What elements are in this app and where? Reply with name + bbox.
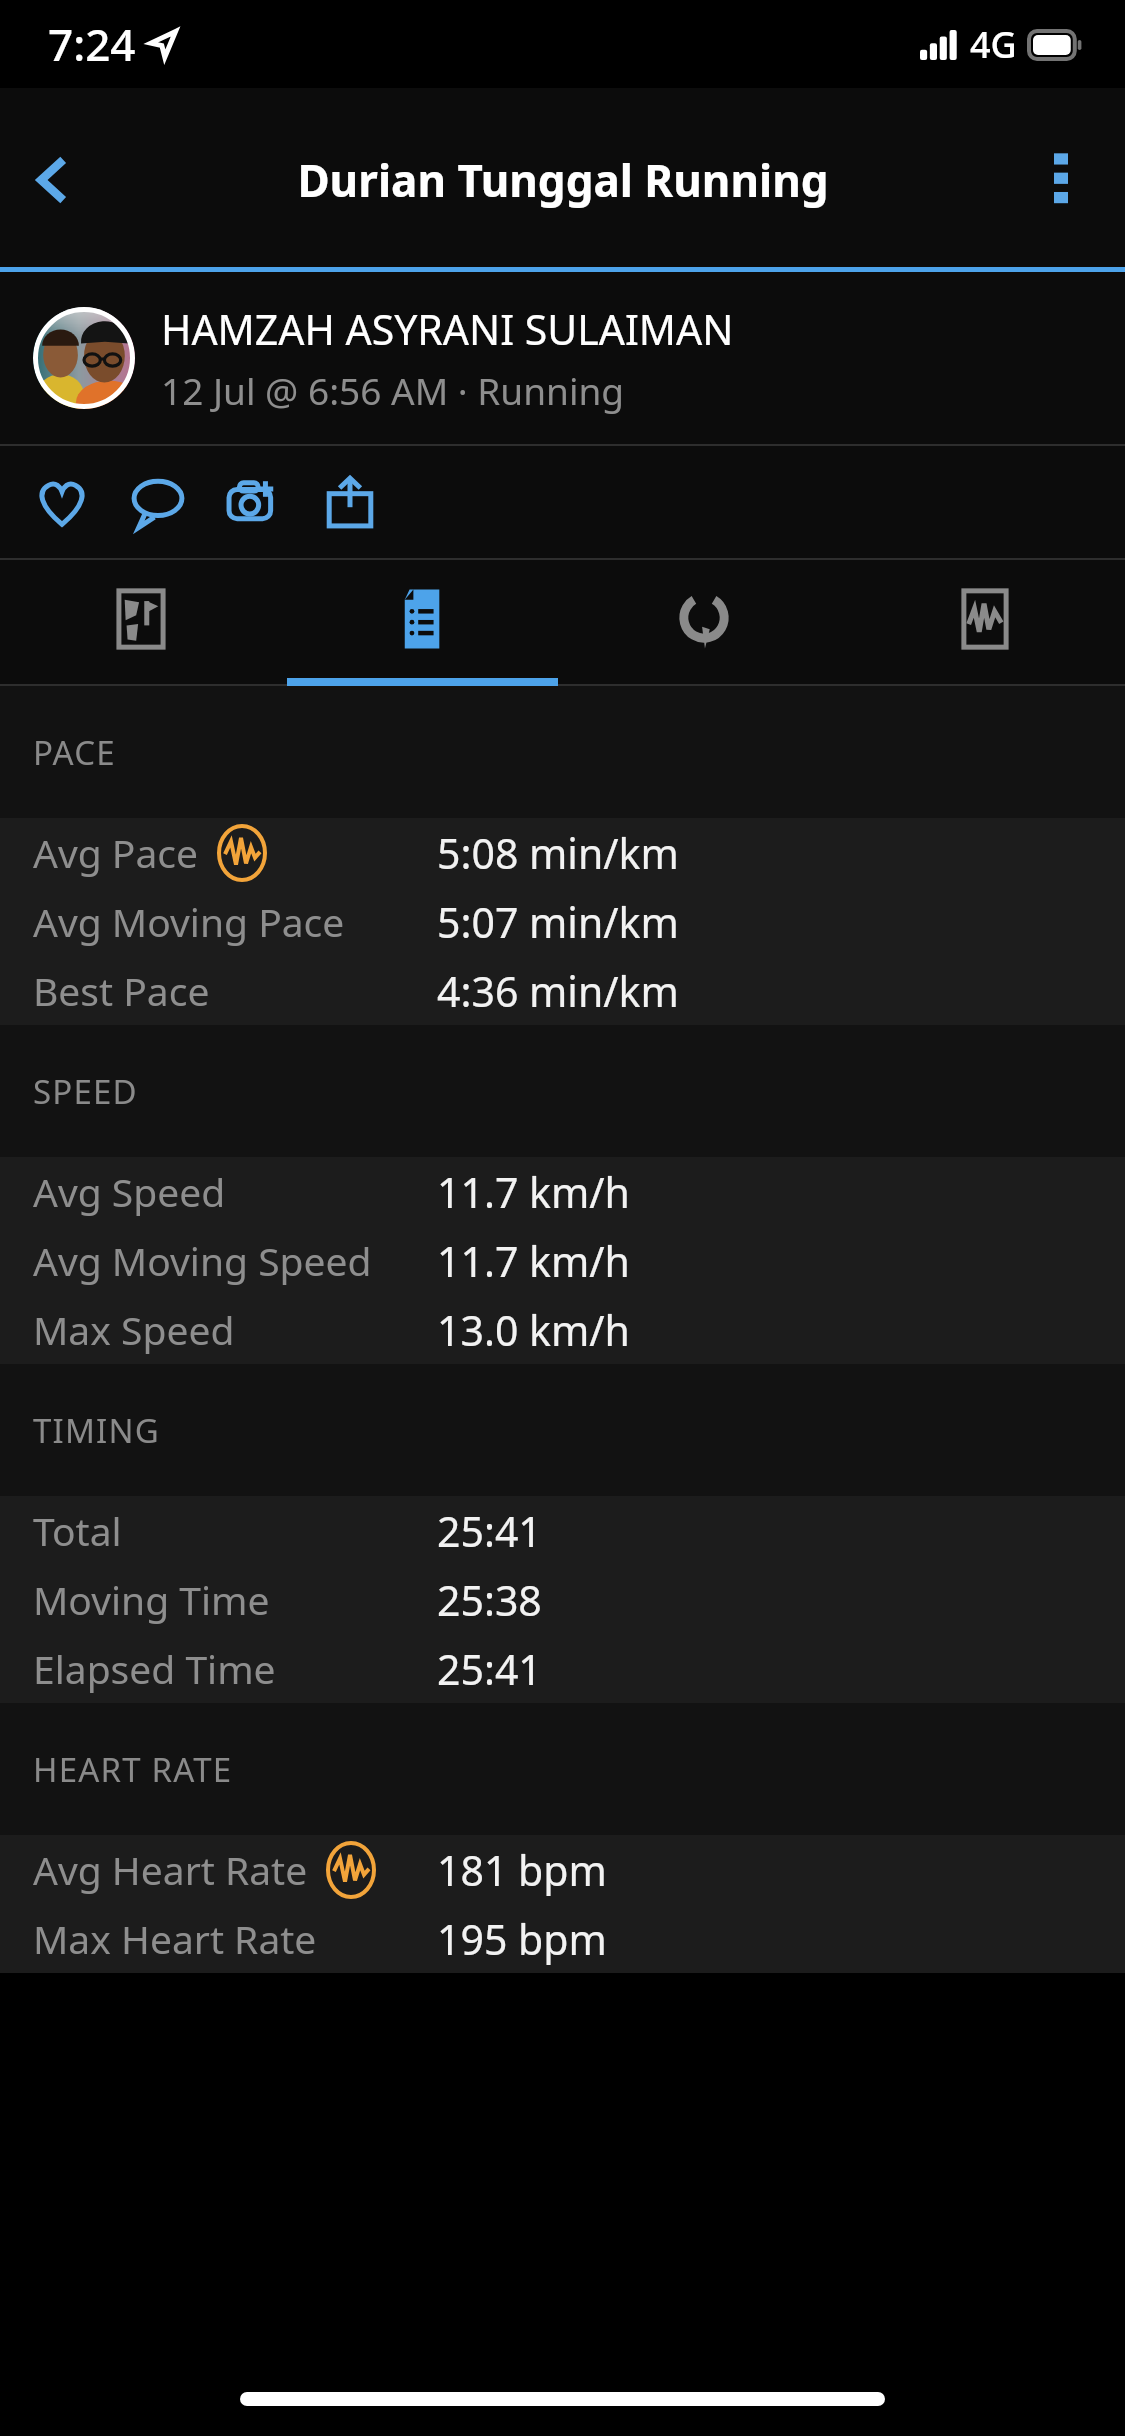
button[interactable]: Map: [0, 560, 282, 678]
button[interactable]: Max Speed: [0, 1295, 1125, 1364]
staticText: SPEED: [33, 1069, 138, 1114]
staticText: 11.7 km/h: [437, 1233, 630, 1289]
button[interactable]: Avg Moving Pace: [0, 887, 1125, 956]
staticText: 4:36 min/km: [437, 963, 679, 1019]
staticText: 25:38: [437, 1572, 542, 1628]
staticText: 195 bpm: [437, 1911, 607, 1967]
button[interactable]: Best Pace: [0, 956, 1125, 1025]
staticText: Avg Heart Rate: [33, 1843, 308, 1896]
staticText: Avg Speed: [33, 1165, 226, 1218]
staticText: Avg Pace: [33, 826, 199, 879]
staticText: 181 bpm: [437, 1842, 607, 1898]
button[interactable]: Avg Moving Speed: [0, 1226, 1125, 1295]
staticText: Avg Moving Speed: [33, 1234, 372, 1287]
button[interactable]: HAMZAH ASYRANI SULAIMAN: [0, 272, 1125, 444]
staticText: 5:07 min/km: [437, 894, 679, 950]
button[interactable]: Avg Speed: [0, 1157, 1125, 1226]
button[interactable]: Elapsed Time: [0, 1634, 1125, 1703]
staticText: Moving Time: [33, 1573, 270, 1626]
button[interactable]: Like: [14, 452, 110, 552]
staticText: Elapsed Time: [33, 1642, 276, 1695]
staticText: HEART RATE: [33, 1747, 233, 1792]
button[interactable]: Graphs: [844, 560, 1125, 678]
button[interactable]: Avg Heart Rate: [0, 1835, 1125, 1904]
button[interactable]: Comment: [110, 452, 206, 552]
staticText: Max Heart Rate: [33, 1912, 317, 1965]
staticText: 13.0 km/h: [437, 1302, 630, 1358]
staticText: Total: [33, 1504, 122, 1557]
staticText: 5:08 min/km: [437, 825, 679, 881]
button[interactable]: Share: [302, 452, 398, 552]
staticText: TIMING: [33, 1408, 160, 1453]
button[interactable]: Avg Pace: [0, 818, 1125, 887]
staticText: 25:41: [437, 1503, 542, 1559]
button[interactable]: Details: [282, 560, 563, 678]
staticText: PACE: [33, 730, 116, 775]
staticText: 11.7 km/h: [437, 1164, 630, 1220]
button[interactable]: Total: [0, 1496, 1125, 1565]
staticText: Max Speed: [33, 1303, 235, 1356]
staticText: 4G: [970, 20, 1017, 69]
staticText: HAMZAH ASYRANI SULAIMAN: [161, 301, 734, 357]
staticText: Avg Moving Pace: [33, 895, 345, 948]
staticText: Durian Tunggal Running: [297, 150, 829, 210]
staticText: Best Pace: [33, 964, 210, 1017]
staticText: 12 Jul @ 6:56 AM · Running: [161, 365, 625, 415]
button[interactable]: More options: [1015, 134, 1107, 226]
button[interactable]: Add photo: [206, 452, 302, 552]
button[interactable]: Back: [6, 132, 102, 228]
staticText: 7:24: [48, 14, 136, 74]
staticText: 25:41: [437, 1641, 542, 1697]
button[interactable]: Moving Time: [0, 1565, 1125, 1634]
button[interactable]: Max Heart Rate: [0, 1904, 1125, 1973]
button[interactable]: Laps: [563, 560, 844, 678]
